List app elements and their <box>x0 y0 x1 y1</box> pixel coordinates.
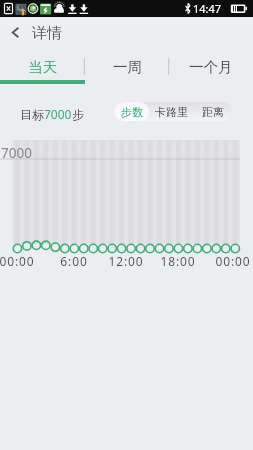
button[interactable]: 当天 <box>0 47 85 84</box>
staticText: 12:00 <box>108 253 144 269</box>
button[interactable]: 距离 <box>193 102 232 121</box>
staticText: 6:00 <box>60 253 88 269</box>
staticText: 详情 <box>32 24 62 43</box>
staticText: 卡路里 <box>155 105 188 119</box>
staticText: 当天 <box>28 58 57 76</box>
staticText: 00:00 <box>0 253 35 269</box>
button[interactable]: 一周 <box>85 47 169 84</box>
button[interactable]: 一个月 <box>169 47 253 84</box>
staticText: 步 <box>72 107 84 122</box>
staticText: 14:47 <box>193 1 222 16</box>
button[interactable]: 卡路里 <box>149 102 193 121</box>
staticText: 一周 <box>113 58 142 76</box>
staticText: 7000 <box>44 106 72 122</box>
staticText: 7000 <box>1 144 32 162</box>
button[interactable]: Back <box>0 17 31 47</box>
staticText: 距离 <box>202 105 224 119</box>
button[interactable]: 步数 <box>114 102 149 121</box>
staticText: 18:00 <box>160 253 196 269</box>
staticText: 目标 <box>20 107 44 122</box>
staticText: 一个月 <box>189 58 233 76</box>
staticText: 00:00 <box>215 253 251 269</box>
staticText: 步数 <box>121 105 143 119</box>
